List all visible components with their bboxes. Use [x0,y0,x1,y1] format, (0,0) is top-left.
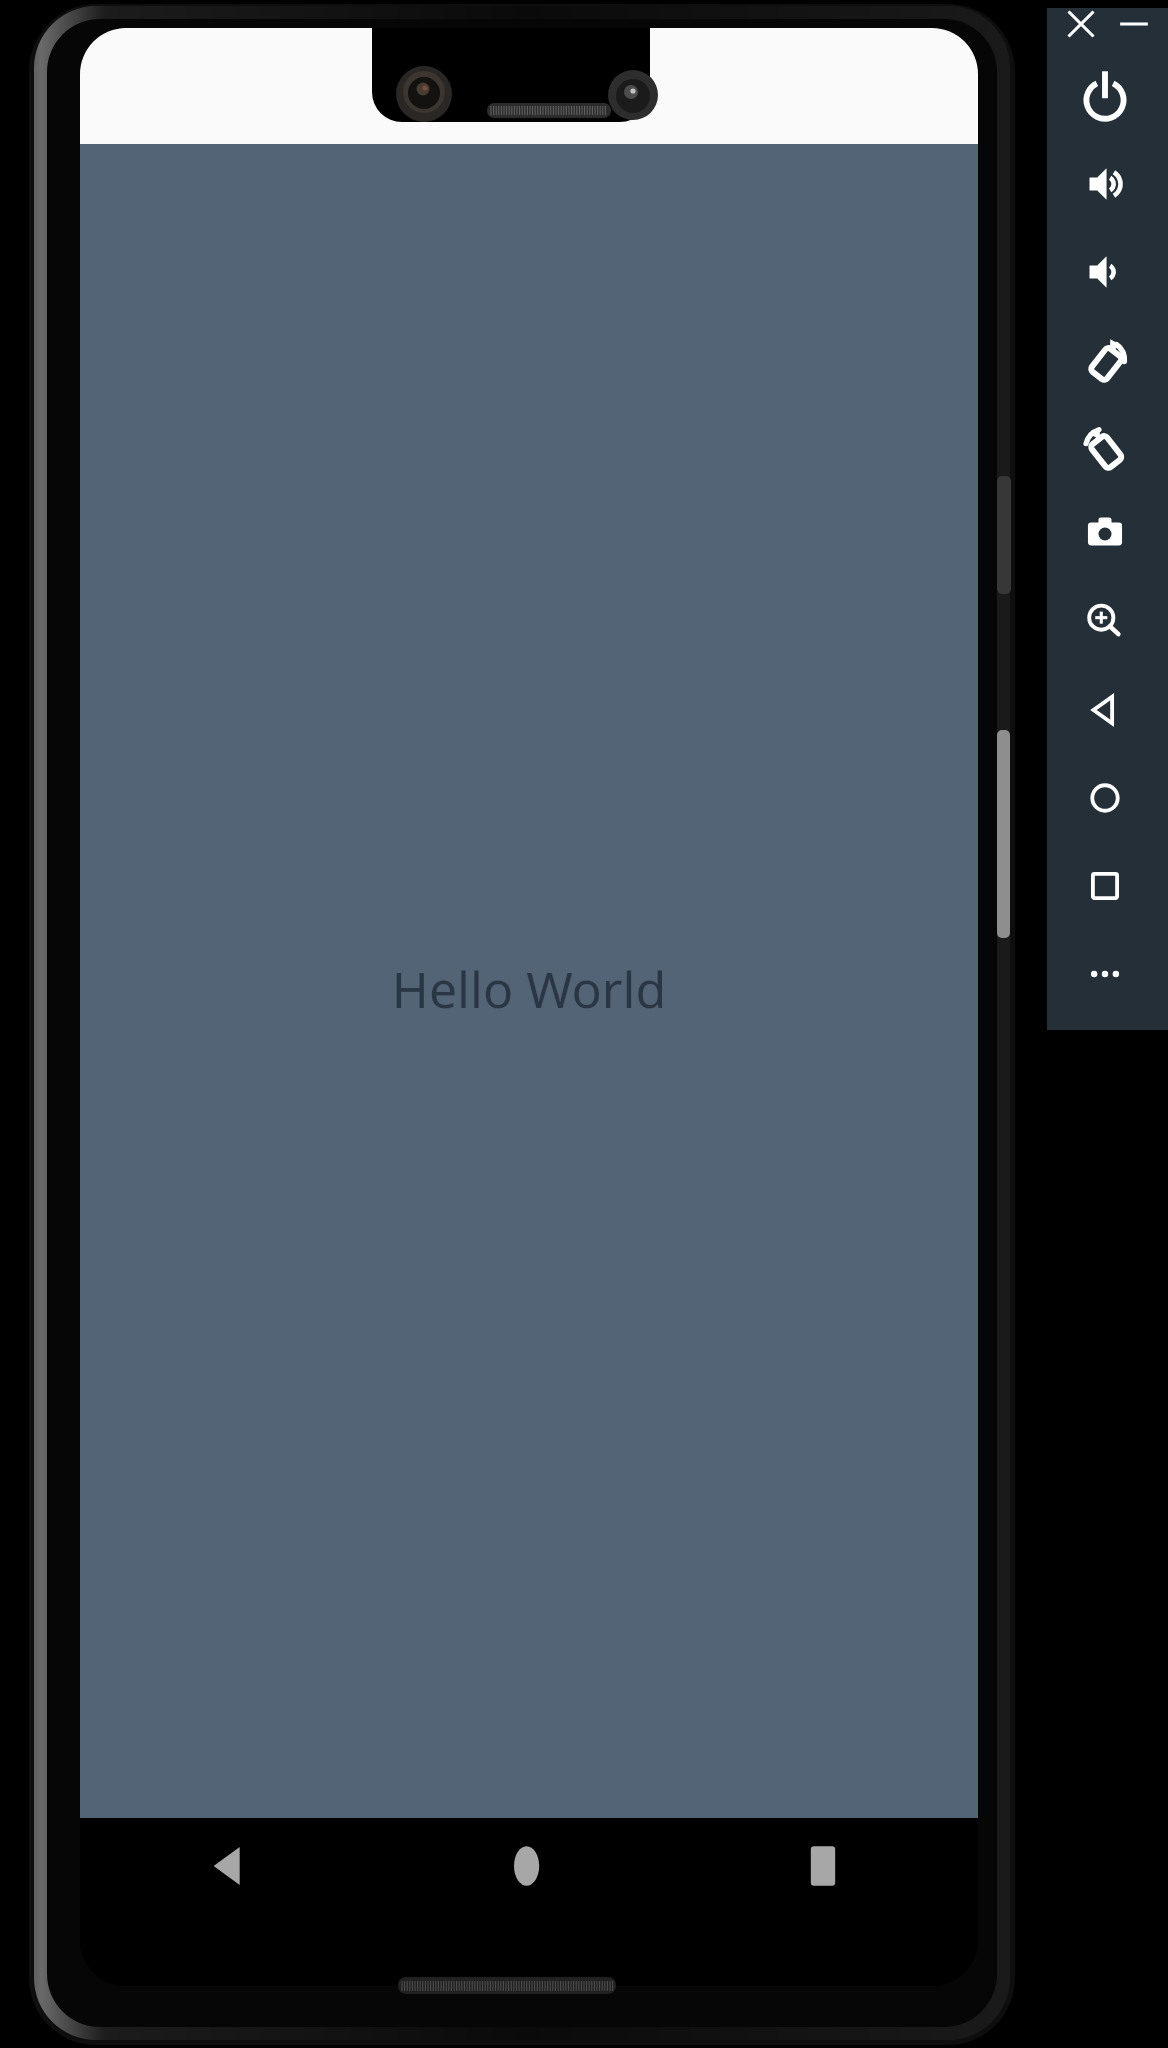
button[interactable]: Overview [1074,855,1136,917]
button[interactable]: Home [1074,767,1136,829]
button[interactable]: Volume up [1074,153,1136,215]
button[interactable]: Recent apps [781,1824,865,1908]
button[interactable]: Minimize [1112,2,1156,46]
button[interactable]: Back [1074,679,1136,741]
button[interactable]: Volume down [1074,241,1136,303]
button[interactable]: Power [1074,66,1136,128]
staticText: Hello World [329,955,729,1019]
button[interactable]: More options [1074,943,1136,1005]
button[interactable]: Zoom [1074,591,1136,653]
button[interactable]: Rotate right [1074,416,1136,478]
button[interactable]: Take screenshot [1074,503,1136,565]
button[interactable]: Home [485,1824,569,1908]
button[interactable]: Rotate left [1074,328,1136,390]
button[interactable]: Close [1059,2,1103,46]
button[interactable]: Back [188,1824,272,1908]
